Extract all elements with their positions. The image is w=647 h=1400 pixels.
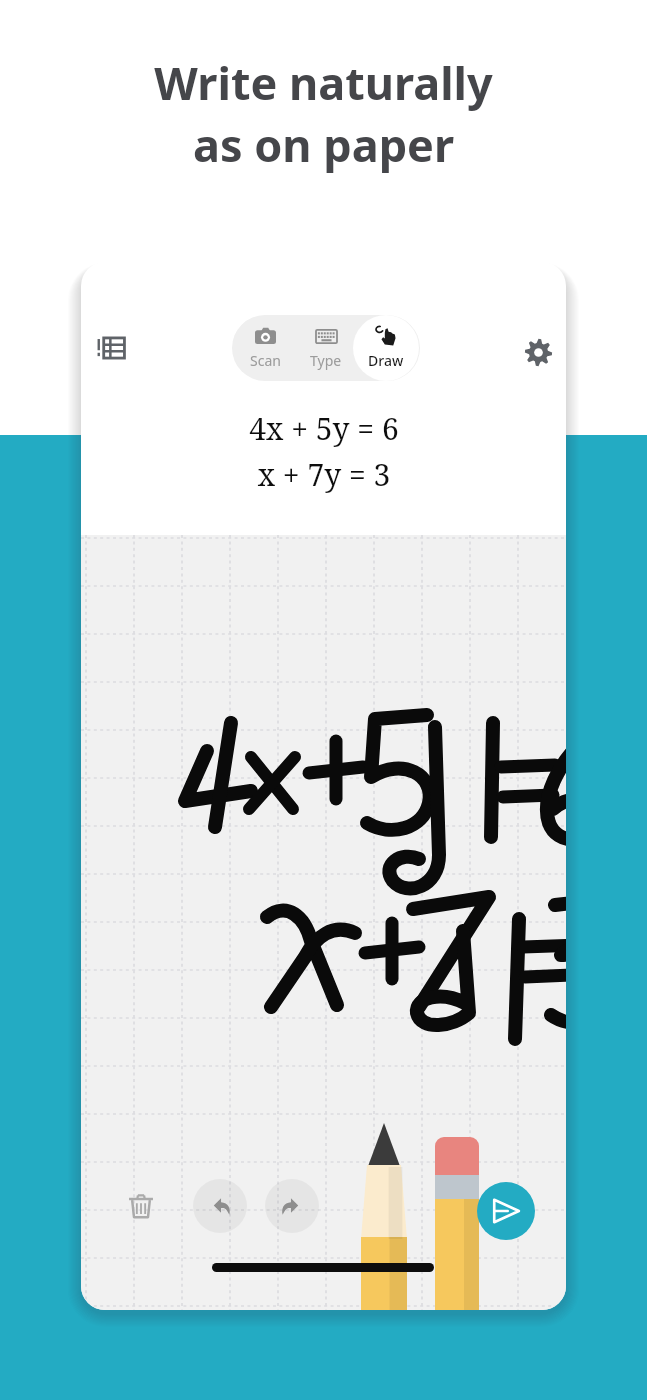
- button[interactable]: Redo: [265, 1179, 319, 1233]
- button[interactable]: Clear: [115, 1180, 167, 1232]
- staticText: Draw: [368, 351, 404, 370]
- staticText: Scan: [250, 351, 281, 370]
- button[interactable]: Scan: [232, 315, 298, 381]
- button[interactable]: Send: [477, 1182, 535, 1240]
- staticText: Write naturally as on paper: [154, 52, 493, 175]
- button[interactable]: Settings: [510, 324, 566, 380]
- button[interactable]: Draw: [353, 315, 419, 381]
- staticText: Type: [310, 351, 342, 370]
- button[interactable]: Undo: [193, 1179, 247, 1233]
- button[interactable]: Problem list: [83, 320, 139, 376]
- button[interactable]: Type: [293, 315, 359, 381]
- staticText: 4x + 5y = 6 x + 7y = 3: [249, 408, 399, 495]
